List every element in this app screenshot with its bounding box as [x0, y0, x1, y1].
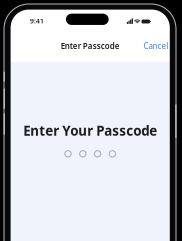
button[interactable]: Cancel [139, 36, 173, 56]
staticText: Enter Passcode [61, 41, 120, 51]
staticText: Cancel [143, 40, 168, 51]
staticText: 9:41 [30, 17, 44, 25]
staticText: Enter Your Passcode [23, 122, 157, 139]
